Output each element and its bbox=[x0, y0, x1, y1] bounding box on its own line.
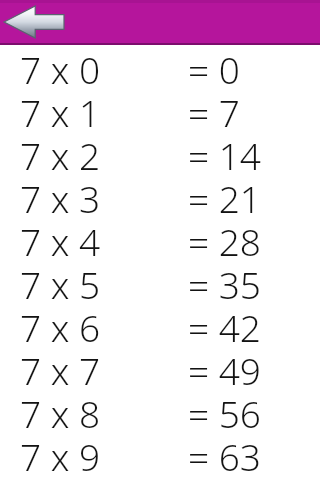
button[interactable]: 7 x 0 bbox=[0, 45, 320, 88]
staticText: 7 x 7 bbox=[20, 345, 101, 388]
button[interactable]: Back bbox=[0, 2, 70, 42]
staticText: = 49 bbox=[188, 345, 262, 388]
button[interactable]: 7 x 7 bbox=[0, 346, 320, 389]
staticText: = 28 bbox=[188, 216, 262, 259]
button[interactable]: 7 x 3 bbox=[0, 174, 320, 217]
button[interactable]: 7 x 2 bbox=[0, 131, 320, 174]
staticText: 7 x 9 bbox=[20, 431, 101, 474]
staticText: 7 x 4 bbox=[20, 216, 101, 259]
staticText: = 56 bbox=[188, 388, 262, 431]
staticText: = 7 bbox=[188, 87, 240, 130]
staticText: = 21 bbox=[188, 173, 262, 216]
staticText: 7 x 2 bbox=[20, 130, 101, 173]
staticText: = 63 bbox=[188, 431, 262, 474]
button[interactable]: 7 x 4 bbox=[0, 217, 320, 260]
staticText: = 35 bbox=[188, 259, 262, 302]
staticText: 7 x 8 bbox=[20, 388, 101, 431]
staticText: 7 x 1 bbox=[20, 87, 101, 130]
staticText: = 42 bbox=[188, 302, 262, 345]
button[interactable]: 7 x 5 bbox=[0, 260, 320, 303]
staticText: 7 x 0 bbox=[20, 44, 101, 87]
button[interactable]: 7 x 6 bbox=[0, 303, 320, 346]
button[interactable]: 7 x 1 bbox=[0, 88, 320, 131]
staticText: = 0 bbox=[188, 44, 240, 87]
staticText: 7 x 3 bbox=[20, 173, 101, 216]
staticText: = 14 bbox=[188, 130, 262, 173]
button[interactable]: 7 x 9 bbox=[0, 432, 320, 475]
staticText: 7 x 6 bbox=[20, 302, 101, 345]
button[interactable]: 7 x 8 bbox=[0, 389, 320, 432]
staticText: 7 x 5 bbox=[20, 259, 101, 302]
